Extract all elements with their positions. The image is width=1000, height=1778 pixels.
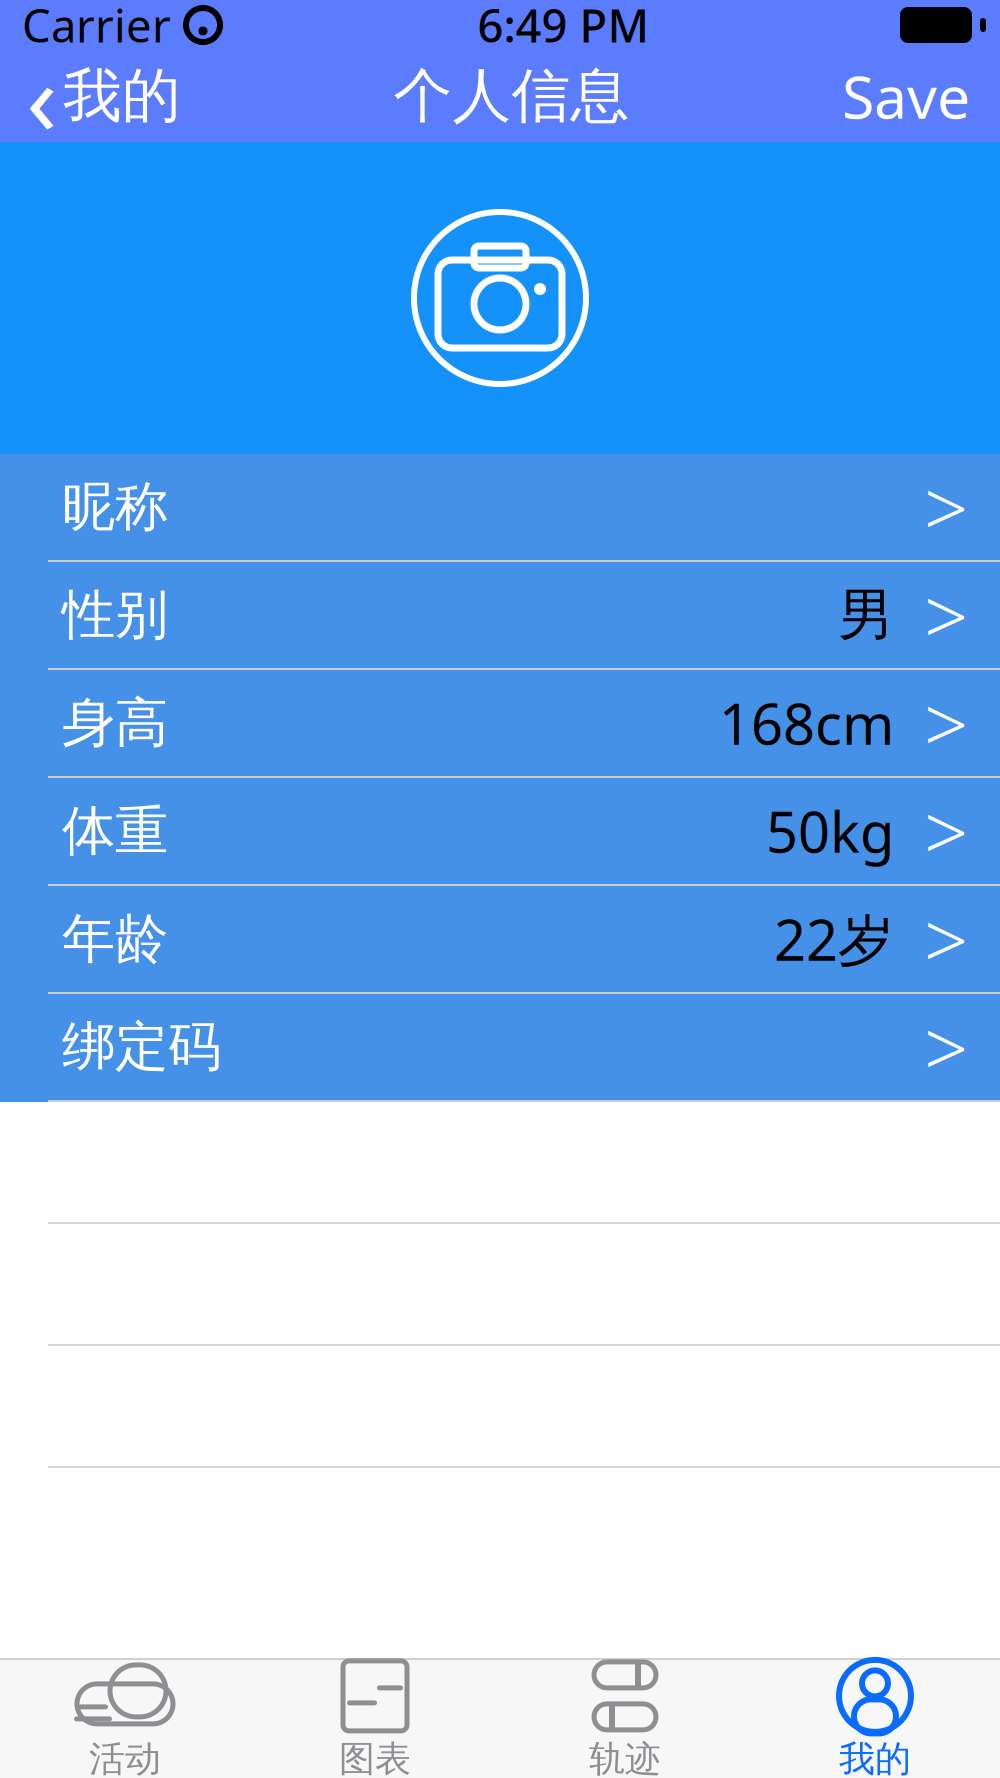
staticText: Save: [842, 57, 970, 135]
button[interactable]: 昵称: [0, 454, 1000, 562]
staticText: >: [924, 672, 968, 774]
staticText: 活动: [89, 1737, 161, 1778]
staticText: 50kg: [766, 794, 894, 868]
button[interactable]: 我的: [750, 1660, 1000, 1778]
button[interactable]: 绑定码: [0, 994, 1000, 1102]
staticText: 体重: [62, 798, 168, 864]
staticText: Carrier: [22, 0, 171, 55]
staticText: 男: [838, 581, 894, 649]
staticText: 我的: [63, 60, 181, 132]
button[interactable]: 性别: [0, 562, 1000, 670]
staticText: >: [924, 780, 968, 882]
button[interactable]: Save: [842, 50, 1000, 142]
staticText: 个人信息: [393, 60, 629, 132]
staticText: ‹: [26, 29, 57, 163]
button[interactable]: 活动: [0, 1660, 250, 1778]
staticText: >: [924, 888, 968, 990]
staticText: >: [924, 996, 968, 1098]
button[interactable]: 轨迹: [500, 1660, 750, 1778]
button[interactable]: 图表: [250, 1660, 500, 1778]
button[interactable]: Change profile photo: [0, 142, 1000, 454]
staticText: 年龄: [62, 906, 168, 972]
button[interactable]: 身高: [0, 670, 1000, 778]
button[interactable]: 体重: [0, 778, 1000, 886]
staticText: 轨迹: [589, 1737, 661, 1778]
staticText: 性别: [62, 582, 168, 648]
staticText: 6:49 PM: [477, 0, 649, 55]
button[interactable]: 年龄: [0, 886, 1000, 994]
staticText: 22岁: [774, 902, 894, 976]
staticText: >: [924, 564, 968, 666]
staticText: 身高: [62, 690, 168, 756]
button[interactable]: ‹: [0, 50, 181, 142]
staticText: 图表: [339, 1737, 411, 1778]
staticText: >: [924, 456, 968, 558]
staticText: 168cm: [719, 686, 894, 760]
staticText: 绑定码: [62, 1014, 221, 1080]
staticText: 我的: [839, 1737, 911, 1778]
staticText: 昵称: [62, 474, 168, 540]
